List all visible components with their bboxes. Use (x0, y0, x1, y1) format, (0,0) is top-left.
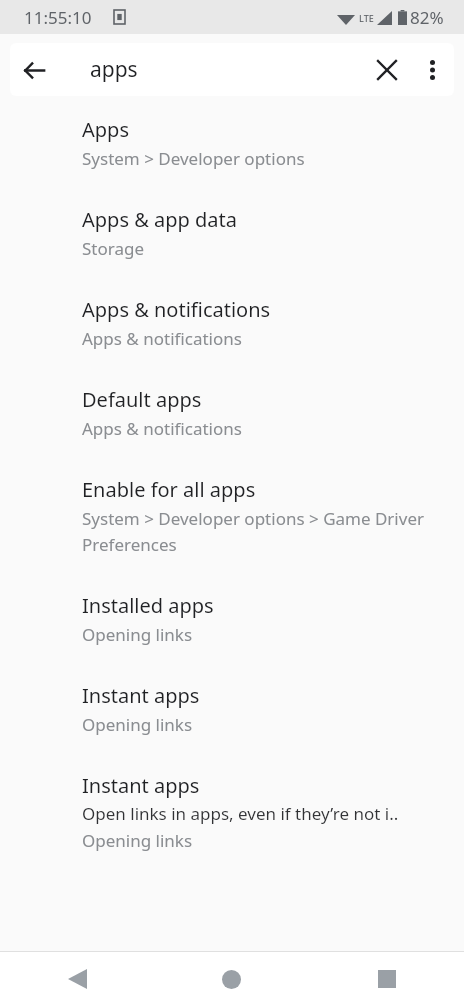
button[interactable]: Instant apps (0, 772, 464, 888)
staticText: Installed apps (82, 592, 214, 619)
button[interactable]: Apps & app data (0, 206, 464, 296)
staticText: Open links in apps, even if they’re not … (82, 802, 399, 825)
staticText: Opening links (82, 713, 193, 736)
staticText: System > Developer options > Game Driver… (82, 507, 442, 556)
staticText: Apps & app data (82, 206, 237, 233)
staticText: apps (90, 55, 138, 84)
staticText: Instant apps (82, 682, 200, 709)
button[interactable]: Installed apps (0, 592, 464, 682)
staticText: 82% (410, 6, 444, 29)
staticText: Apps & notifications (82, 296, 271, 323)
button[interactable]: Recent apps (309, 952, 464, 1006)
staticText: Instant apps (82, 772, 200, 799)
button[interactable]: Default apps (0, 386, 464, 476)
button[interactable]: Clear search (364, 47, 410, 93)
staticText: Opening links (82, 829, 193, 852)
staticText: Opening links (82, 623, 193, 646)
button[interactable]: Instant apps (0, 682, 464, 772)
staticText: LTE (359, 12, 374, 24)
button[interactable]: More options (410, 48, 454, 92)
staticText: Enable for all apps (82, 476, 256, 503)
staticText: Apps & notifications (82, 327, 242, 350)
staticText: Storage (82, 237, 145, 260)
button[interactable]: Enable for all apps (0, 476, 464, 592)
staticText: 11:55:10 (24, 6, 92, 29)
button[interactable]: Apps & notifications (0, 296, 464, 386)
staticText: System > Developer options (82, 147, 305, 170)
button[interactable]: Back (0, 952, 154, 1006)
button[interactable]: Home (154, 952, 309, 1006)
staticText: Default apps (82, 386, 202, 413)
button[interactable]: Apps (0, 116, 464, 206)
staticText: Apps (82, 116, 129, 143)
staticText: Apps & notifications (82, 417, 242, 440)
button[interactable]: Back (10, 46, 58, 94)
